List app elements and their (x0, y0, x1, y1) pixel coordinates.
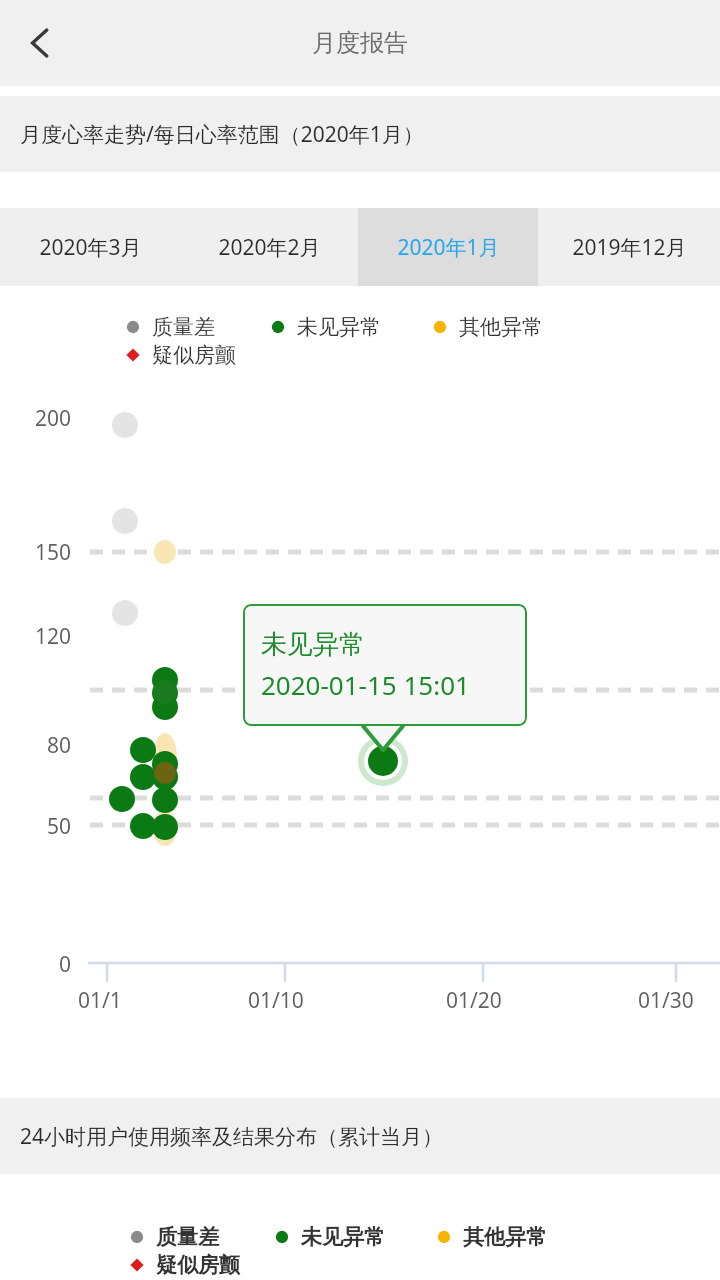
staticText: 2019年12月 (572, 233, 687, 262)
staticText: 未见异常 (301, 1224, 385, 1250)
staticText: 2020-01-15 15:01 (261, 667, 470, 702)
staticText: 月度心率走势/每日心率范围（2020年1月） (20, 120, 424, 149)
staticText: 120 (35, 622, 72, 651)
button[interactable]: 2020年1月 (358, 208, 538, 286)
staticText: 01/30 (638, 986, 694, 1015)
staticText: 2020年2月 (218, 233, 321, 262)
button[interactable]: 2020年3月 (0, 208, 180, 286)
staticText: 未见异常 (297, 314, 381, 340)
staticText: 80 (47, 731, 72, 760)
staticText: 01/1 (78, 986, 122, 1015)
button[interactable]: 2020年2月 (180, 208, 358, 286)
staticText: 月度报告 (312, 28, 408, 58)
staticText: 200 (35, 404, 72, 433)
button[interactable]: 2019年12月 (538, 208, 720, 286)
staticText: 24小时用户使用频率及结果分布（累计当月） (20, 1122, 444, 1151)
button[interactable]: 未见异常 (243, 604, 527, 726)
staticText: 其他异常 (463, 1224, 547, 1250)
staticText: 质量差 (152, 314, 215, 340)
staticText: 2020年3月 (39, 233, 142, 262)
staticText: 疑似房颤 (156, 1252, 240, 1278)
staticText: 其他异常 (459, 314, 543, 340)
staticText: 01/20 (446, 986, 502, 1015)
staticText: 50 (47, 812, 72, 841)
staticText: 150 (35, 538, 72, 567)
staticText: 2020年1月 (397, 233, 500, 262)
button[interactable]: Back (0, 3, 80, 83)
staticText: 未见异常 (261, 628, 365, 661)
staticText: 01/10 (248, 986, 304, 1015)
staticText: 0 (59, 950, 72, 979)
staticText: 疑似房颤 (152, 342, 236, 368)
staticText: 质量差 (156, 1224, 219, 1250)
